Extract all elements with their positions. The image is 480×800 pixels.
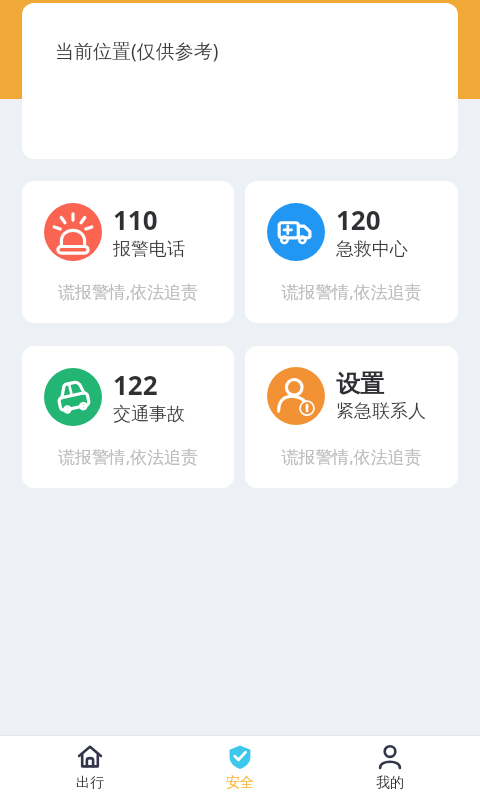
staticText: 急救中心: [336, 238, 408, 261]
button[interactable]: 110: [22, 181, 234, 323]
staticText: 出行: [76, 774, 104, 792]
button[interactable]: 出行: [30, 735, 150, 800]
button[interactable]: 设置: [245, 346, 458, 488]
staticText: 当前位置(仅供参考): [55, 38, 219, 64]
staticText: 安全: [226, 774, 254, 792]
staticText: 报警电话: [113, 238, 185, 261]
button[interactable]: 120: [245, 181, 458, 323]
button[interactable]: 当前位置(仅供参考): [22, 3, 458, 159]
staticText: 谎报警情,依法追责: [22, 280, 234, 303]
button[interactable]: 我的: [330, 735, 450, 800]
staticText: 设置: [336, 369, 384, 399]
staticText: 谎报警情,依法追责: [22, 445, 234, 468]
button[interactable]: 122: [22, 346, 234, 488]
staticText: 交通事故: [113, 403, 185, 426]
staticText: 谎报警情,依法追责: [245, 445, 458, 468]
staticText: 我的: [376, 774, 404, 792]
staticText: 紧急联系人: [336, 400, 426, 423]
staticText: 120: [336, 202, 381, 237]
staticText: 谎报警情,依法追责: [245, 280, 458, 303]
button[interactable]: 安全: [180, 735, 300, 800]
staticText: 122: [113, 367, 158, 402]
staticText: 110: [113, 202, 158, 237]
